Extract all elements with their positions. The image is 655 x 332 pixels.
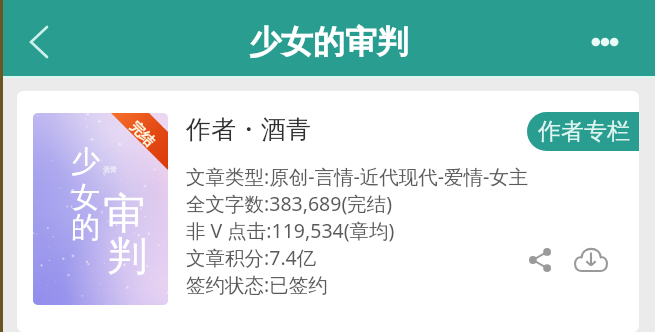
- staticText: 文章积分:7.4亿: [186, 244, 317, 271]
- button[interactable]: More options: [581, 18, 629, 66]
- staticText: 非 V 点击:119,534(章均): [186, 217, 395, 244]
- staticText: 的: [71, 209, 100, 246]
- staticText: 判: [107, 231, 147, 281]
- staticText: 文章类型:原创-言情-近代现代-爱情-女主: [186, 163, 529, 190]
- staticText: 少女的审判: [249, 22, 409, 62]
- button[interactable]: Download: [568, 237, 614, 279]
- button[interactable]: Share: [520, 240, 560, 280]
- staticText: 女: [71, 179, 100, 216]
- staticText: 作者・酒青: [186, 114, 311, 145]
- staticText: 签约状态:已签约: [186, 271, 328, 298]
- button[interactable]: 完结: [33, 113, 168, 305]
- staticText: 审: [103, 188, 145, 241]
- staticText: 全文字数:383,689(完结): [186, 190, 393, 217]
- button[interactable]: Back: [13, 16, 65, 68]
- staticText: 完结: [128, 118, 158, 149]
- staticText: 作者专栏: [538, 117, 630, 146]
- button[interactable]: 作者专栏: [527, 112, 639, 151]
- staticText: 酒青: [103, 165, 117, 174]
- staticText: 少: [71, 143, 100, 180]
